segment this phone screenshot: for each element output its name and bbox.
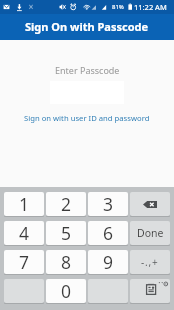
staticText: 0 [61, 279, 72, 303]
staticText: 3 [103, 192, 114, 216]
button[interactable]: 1 [4, 192, 44, 216]
button[interactable]: 5 [46, 221, 86, 245]
staticText: Done [137, 226, 164, 240]
button[interactable]: 6 [88, 221, 128, 245]
button[interactable]: Sign on with user ID and password [24, 113, 150, 123]
staticText: 1 [19, 192, 30, 216]
staticText: 7 [19, 250, 30, 274]
staticText: -.,+ [141, 255, 159, 269]
button[interactable]: 3 [88, 192, 128, 216]
button[interactable]: Done [130, 221, 170, 245]
staticText: 11:22 AM [134, 2, 167, 12]
button[interactable]: 2 [46, 192, 86, 216]
button[interactable]: Switch keyboard [130, 279, 170, 303]
button[interactable]: Symbols [130, 250, 170, 274]
button[interactable]: Backspace [130, 192, 170, 216]
button[interactable]: 8 [46, 250, 86, 274]
staticText: 5 [61, 221, 72, 245]
button[interactable]: 0 [46, 279, 86, 303]
staticText: Enter Passcode [55, 64, 120, 76]
staticText: 8 [61, 250, 72, 274]
staticText: 6 [103, 221, 114, 245]
staticText: 9 [103, 250, 114, 274]
staticText: 81% [112, 3, 124, 11]
staticText: 4 [19, 221, 30, 245]
button[interactable]: 9 [88, 250, 128, 274]
button[interactable]: 4 [4, 221, 44, 245]
staticText: Sign On with Passcode [25, 19, 149, 34]
staticText: 2 [61, 192, 72, 216]
button[interactable]: 7 [4, 250, 44, 274]
